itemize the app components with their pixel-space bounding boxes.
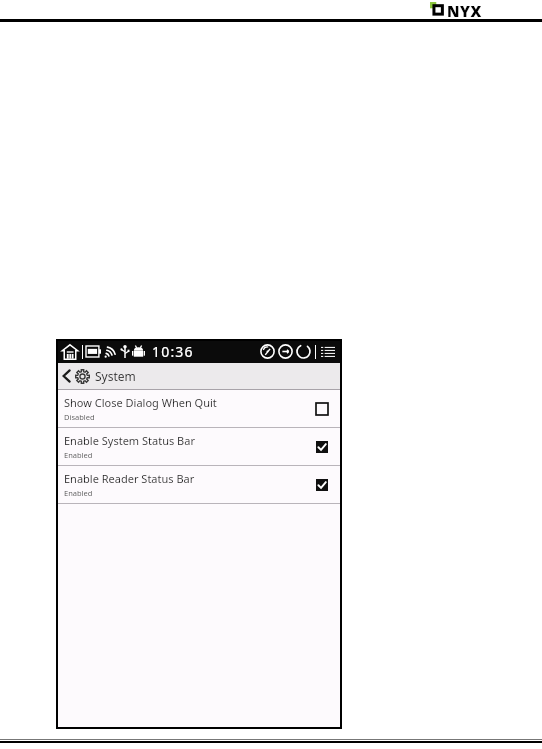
button[interactable]: Enabled — [313, 476, 331, 494]
button[interactable]: Back — [57, 363, 341, 389]
button[interactable]: Brightness — [278, 344, 293, 359]
button[interactable]: Enable System Status Bar — [57, 428, 341, 465]
button[interactable]: Disabled — [313, 400, 331, 418]
staticText: Enable System Status Bar — [64, 433, 195, 448]
button[interactable]: Home — [62, 344, 78, 360]
staticText: Enable Reader Status Bar — [64, 471, 195, 486]
staticText: Show Close Dialog When Quit — [64, 395, 217, 410]
staticText: Enabled — [64, 488, 93, 498]
button[interactable]: Rotate — [296, 344, 311, 359]
staticText: NYX — [447, 1, 482, 18]
button[interactable]: Menu — [321, 346, 335, 358]
staticText: Enabled — [64, 450, 93, 460]
staticText: System — [95, 368, 136, 384]
button[interactable]: Show Close Dialog When Quit — [57, 390, 341, 427]
staticText: Disabled — [64, 412, 95, 422]
button[interactable]: Refresh mode — [260, 344, 275, 359]
other: Back — [62, 369, 71, 383]
staticText: 10:36 — [152, 342, 194, 361]
button[interactable]: Enable Reader Status Bar — [57, 466, 341, 503]
button[interactable]: Enabled — [313, 438, 331, 456]
